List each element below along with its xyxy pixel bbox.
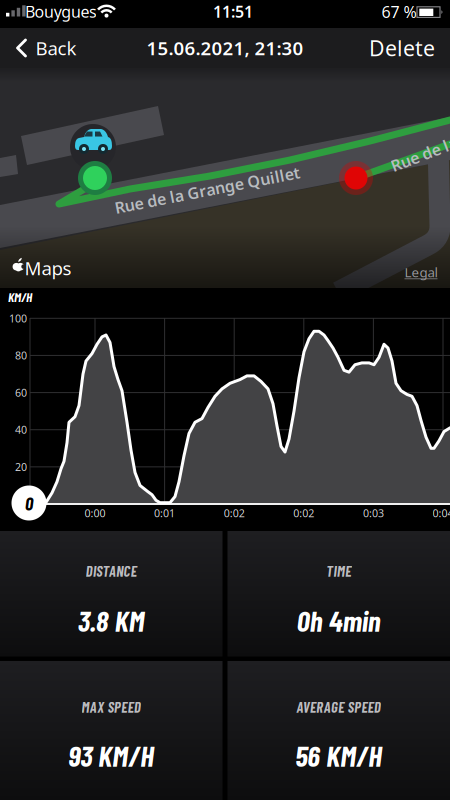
staticText: 40	[15, 423, 27, 437]
staticText: TIME	[326, 562, 351, 580]
button[interactable]: Delete	[364, 28, 440, 68]
staticText: 15.06.2021, 21:30	[146, 36, 303, 60]
staticText: Rue de la	[389, 143, 450, 165]
staticText: Back	[35, 36, 76, 60]
staticText: 0h 4min	[297, 602, 381, 638]
staticText: 3.8 KM	[78, 602, 145, 638]
staticText: 20	[15, 460, 27, 474]
staticText: 11:51	[213, 1, 253, 22]
staticText: Maps	[24, 256, 71, 280]
staticText: 0:00	[84, 506, 105, 520]
staticText: 0:04	[432, 506, 450, 520]
staticText: 0:02	[224, 506, 245, 520]
staticText: 0:02	[293, 506, 314, 520]
staticText: 0:01	[154, 506, 175, 520]
staticText: 60	[15, 385, 27, 400]
staticText: 56 KM/H	[295, 737, 382, 773]
staticText: 0	[25, 492, 33, 514]
staticText: 67 %	[381, 1, 416, 22]
staticText: MAX SPEED	[82, 698, 141, 716]
staticText: Bouygues	[25, 1, 97, 22]
staticText: 100	[9, 311, 27, 325]
button[interactable]: Back	[6, 28, 86, 68]
staticText: 0:03	[363, 506, 384, 520]
staticText: AVERAGE SPEED	[296, 698, 381, 716]
staticText: 80	[15, 348, 27, 363]
staticText: KM/H	[8, 289, 32, 305]
staticText: DISTANCE	[86, 562, 137, 580]
staticText: Rue de la Grange Quillet	[113, 179, 301, 201]
button[interactable]: Legal	[401, 262, 441, 282]
staticText: Delete	[369, 34, 435, 62]
staticText: 93 KM/H	[68, 737, 154, 773]
staticText: Legal	[404, 263, 437, 281]
